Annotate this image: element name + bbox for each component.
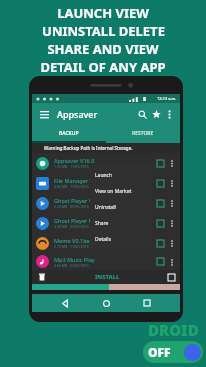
staticText: 4.86 MB 05/05/2016 [54,263,89,268]
staticText: Mp3 Music Play [54,256,95,263]
button[interactable]: Select [157,220,164,227]
staticText: Ghost Player V1 [54,197,96,204]
button[interactable]: Item menu [168,179,176,187]
staticText: 12:13 a.m. [157,96,177,101]
staticText: File Manager V1.3 [54,177,101,184]
button[interactable]: Menu [37,107,51,121]
button[interactable]: Recents [139,295,155,311]
staticText: 2.29 MB 05/05/2016 [54,204,89,209]
staticText: Details [95,236,112,243]
staticText: 4.30 MB 05/05/2016 [54,224,89,229]
button[interactable]: Ghost Player V1 [32,193,180,213]
button[interactable]: Ghost Player Pro [32,213,180,233]
staticText: RESTORE [132,130,154,137]
button[interactable]: Droid Off [143,341,203,363]
staticText: LAUNCH VIEW [57,4,149,22]
staticText: DROID [148,320,199,340]
staticText: INSTALL [95,273,120,281]
staticText: Meme V0.1beta [54,237,95,244]
button[interactable]: Launch [90,167,152,183]
button[interactable]: View on Market [90,183,152,199]
staticText: Uninstall [95,204,116,211]
button[interactable]: Mp3 Music Play [32,253,180,270]
button[interactable]: Select [157,180,164,187]
button[interactable]: Select [157,240,164,247]
staticText: OFF [148,344,171,360]
staticText: 1.65 MB 11/05/2016 [54,164,89,169]
staticText: Ghost Player Pro [54,217,98,224]
button[interactable]: Item menu [168,199,176,207]
button[interactable]: Favorites [149,107,163,121]
staticText: SHARE AND VIEW [47,40,159,58]
staticText: Share [95,220,109,227]
button[interactable]: Appsaver V16.0 [32,153,180,173]
button[interactable]: File Manager V1.3 [32,173,180,193]
button[interactable]: Home [98,295,114,311]
button[interactable]: Item menu [168,219,176,227]
button[interactable]: Back [57,295,73,311]
button[interactable]: Item menu [168,239,176,247]
button[interactable]: Uninstall [90,199,152,215]
staticText: UNINSTALL DELETE [42,22,165,40]
button[interactable]: Select [157,258,164,265]
staticText: DETAIL OF ANY APP [40,58,166,76]
staticText: 4.82 MB 11/05/2016 [54,184,89,189]
staticText: Warning:Backup Path is Internal Storage. [44,145,133,151]
staticText: Appsaver V16.0 [54,157,95,164]
staticText: BACKUP [59,130,79,137]
staticText: Launch [95,172,113,179]
button[interactable]: Meme V0.1beta [32,233,180,253]
staticText: 2.70 MB 11/05/2016 [54,244,89,249]
button[interactable]: Share [90,215,152,231]
button[interactable]: Item menu [168,258,176,266]
button[interactable]: Search [135,107,149,121]
button[interactable]: BACKUP [32,125,106,141]
staticText: Appsaver [57,108,98,120]
button[interactable]: Select [157,200,164,207]
staticText: View on Market [95,188,132,195]
button[interactable]: Delete [37,272,47,282]
button[interactable]: RESTORE [106,125,180,141]
button[interactable]: Select all [168,274,175,281]
button[interactable]: Select [157,160,164,167]
button[interactable]: Details [90,231,152,247]
button[interactable]: More options [163,108,175,120]
button[interactable]: Item menu [168,159,176,167]
